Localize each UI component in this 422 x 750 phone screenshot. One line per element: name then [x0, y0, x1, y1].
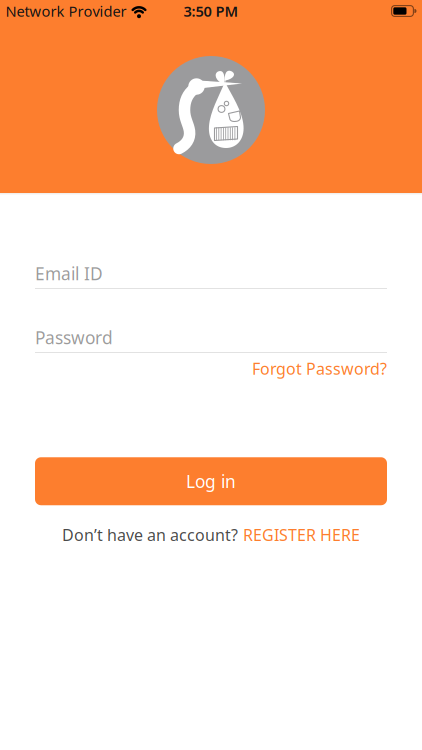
staticText: Network Provider: [5, 1, 126, 21]
staticText: Password: [35, 326, 113, 349]
staticText: REGISTER HERE: [243, 524, 360, 545]
button[interactable]: Log in: [35, 457, 387, 505]
staticText: Email ID: [35, 262, 103, 285]
button[interactable]: Password: [35, 326, 387, 353]
button[interactable]: Email ID: [35, 262, 387, 289]
staticText: Forgot Password?: [252, 358, 387, 379]
button[interactable]: Forgot Password?: [252, 358, 387, 379]
staticText: 3:50 PM: [183, 1, 238, 21]
button[interactable]: REGISTER HERE: [243, 524, 360, 545]
staticText: Log in: [186, 470, 236, 493]
staticText: Don’t have an account?: [62, 524, 238, 545]
